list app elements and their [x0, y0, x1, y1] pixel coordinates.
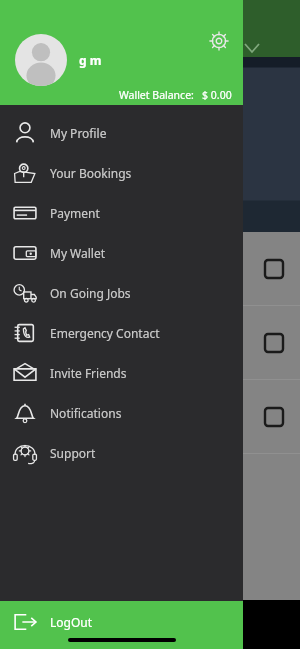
button[interactable]: Select item — [265, 334, 283, 352]
staticText: On Going Jobs — [50, 285, 131, 301]
button[interactable]: Select item — [265, 260, 283, 278]
staticText: Notifications — [50, 405, 122, 421]
button[interactable]: On Going Jobs — [0, 273, 243, 313]
button[interactable]: Support — [0, 433, 243, 473]
button[interactable]: Notifications — [0, 393, 243, 433]
staticText: My Profile — [50, 125, 107, 141]
staticText: LogOut — [50, 614, 93, 630]
button[interactable]: Payment — [0, 193, 243, 233]
button[interactable]: My Wallet — [0, 233, 243, 273]
staticText: Support — [50, 445, 96, 461]
button[interactable]: My Profile — [0, 113, 243, 153]
button[interactable]: LogOut — [0, 601, 243, 649]
staticText: Wallet Balance: $ 0.00 — [119, 88, 232, 102]
staticText: Emergency Contact — [50, 325, 160, 341]
staticText: Your Bookings — [50, 165, 132, 181]
staticText: Payment — [50, 205, 100, 221]
button[interactable]: Invite Friends — [0, 353, 243, 393]
button[interactable]: Your Bookings — [0, 153, 243, 193]
button[interactable]: Settings — [208, 30, 230, 52]
staticText: g m — [79, 52, 102, 68]
staticText: Invite Friends — [50, 365, 127, 381]
button[interactable]: Emergency Contact — [0, 313, 243, 353]
staticText: My Wallet — [50, 245, 106, 261]
button[interactable]: Select item — [265, 408, 283, 426]
